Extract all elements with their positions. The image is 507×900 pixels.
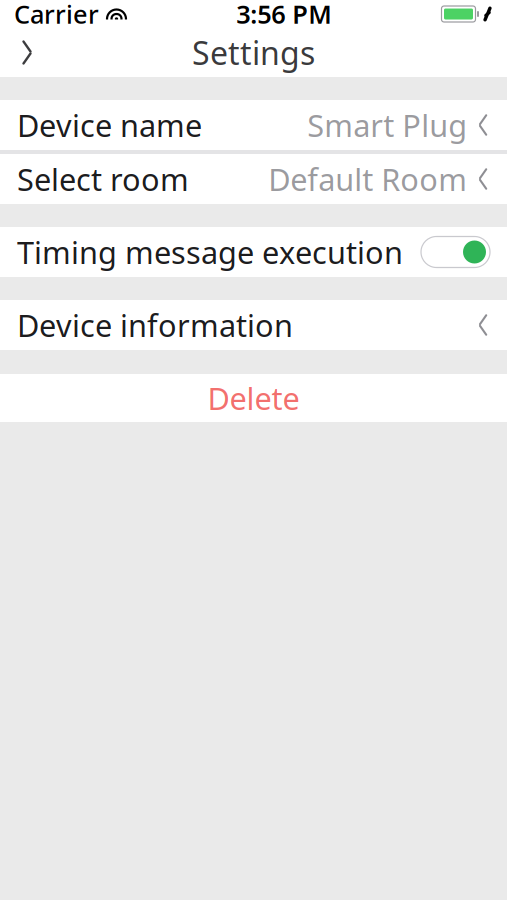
- staticText: Settings: [192, 31, 315, 74]
- staticText: Device information: [17, 305, 293, 345]
- staticText: Delete: [207, 378, 299, 418]
- staticText: Timing message execution: [17, 232, 403, 272]
- staticText: Smart Plug: [307, 105, 467, 145]
- button[interactable]: Timing message execution: [0, 227, 507, 277]
- button[interactable]: Device name: [0, 100, 507, 150]
- staticText: Select room: [17, 159, 189, 199]
- staticText: 3:56 PM: [236, 0, 332, 31]
- staticText: Device name: [17, 105, 202, 145]
- staticText: Default Room: [268, 159, 467, 199]
- button[interactable]: Delete: [0, 374, 507, 422]
- button[interactable]: Back: [0, 28, 54, 76]
- staticText: Carrier: [14, 0, 99, 31]
- button[interactable]: Device information: [0, 300, 507, 350]
- button[interactable]: Select room: [0, 154, 507, 204]
